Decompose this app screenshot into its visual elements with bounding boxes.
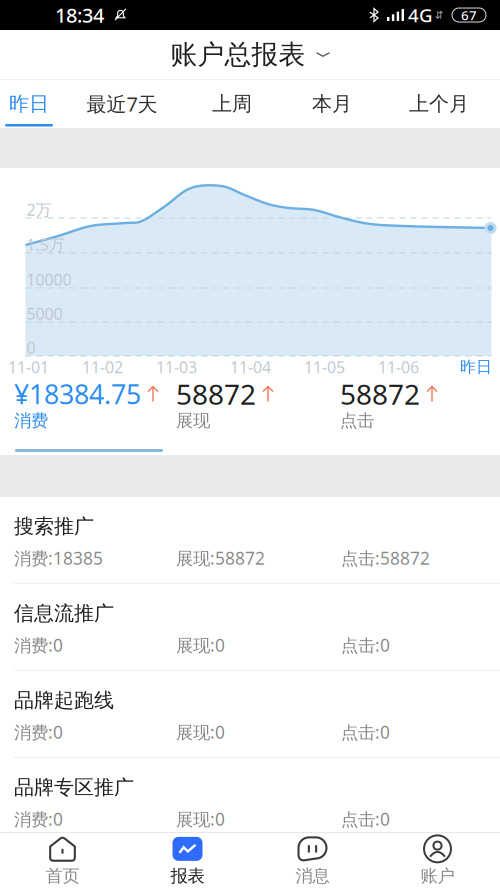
staticText: 搜索推广 — [14, 514, 94, 539]
staticText: 点击:0 — [341, 721, 390, 744]
button[interactable]: 报表 — [125, 833, 250, 889]
staticText: 2万 — [26, 199, 51, 220]
staticText: 67 — [461, 6, 477, 24]
staticText: 首页 — [45, 865, 79, 887]
staticText: 1.5万 — [26, 234, 64, 255]
staticText: 品牌起跑线 — [14, 688, 114, 713]
staticText: 昨日 — [9, 91, 49, 116]
staticText: 展现 — [176, 410, 210, 431]
button[interactable]: 账户 — [375, 833, 500, 889]
staticText: 点击:0 — [341, 634, 390, 657]
staticText: 展现:58872 — [176, 547, 265, 570]
staticText: ¥18384.75 — [14, 376, 141, 412]
staticText: ⇵ — [435, 9, 444, 21]
staticText: 消费:0 — [14, 634, 63, 657]
staticText: 点击:58872 — [341, 547, 430, 570]
staticText: 11-06 — [378, 356, 419, 378]
staticText: 账户 — [420, 865, 454, 887]
staticText: 本月 — [312, 91, 352, 116]
staticText: 11-05 — [304, 356, 345, 378]
button[interactable]: 账户总报表 — [0, 30, 500, 79]
button[interactable]: 首页 — [0, 833, 125, 889]
staticText: 最近7天 — [86, 90, 157, 117]
button[interactable]: 搜索推广 — [0, 497, 500, 583]
staticText: 消费:18385 — [14, 547, 103, 570]
button[interactable]: 品牌专区推广 — [0, 758, 500, 844]
staticText: 11-02 — [82, 356, 123, 378]
staticText: 信息流推广 — [14, 601, 114, 626]
staticText: 58872 — [340, 375, 420, 413]
button[interactable]: 最近7天 — [62, 80, 182, 128]
staticText: 点击:0 — [341, 808, 390, 831]
staticText: 5000 — [26, 303, 62, 324]
staticText: 上个月 — [409, 91, 469, 116]
staticText: 11-03 — [156, 356, 197, 378]
staticText: 4G — [408, 3, 433, 27]
staticText: 消费:0 — [14, 808, 63, 831]
staticText: 18:34 — [55, 2, 104, 28]
staticText: 展现:0 — [176, 808, 225, 831]
button[interactable]: 消息 — [250, 833, 375, 889]
staticText: 消费 — [14, 410, 48, 431]
staticText: 消费:0 — [14, 721, 63, 744]
staticText: 报表 — [170, 865, 204, 887]
button[interactable]: 上周 — [182, 80, 282, 128]
staticText: 昨日 — [460, 357, 492, 377]
staticText: 消息 — [295, 865, 329, 887]
staticText: 展现:0 — [176, 721, 225, 744]
staticText: 11-04 — [230, 356, 271, 378]
staticText: 上周 — [212, 91, 252, 116]
staticText: 点击 — [340, 410, 374, 431]
staticText: 账户总报表 — [170, 38, 305, 71]
button[interactable]: 上个月 — [382, 80, 496, 128]
staticText: 58872 — [176, 375, 256, 413]
staticText: 0 — [26, 337, 35, 358]
button[interactable]: 品牌起跑线 — [0, 671, 500, 757]
staticText: 展现:0 — [176, 634, 225, 657]
button[interactable]: 信息流推广 — [0, 584, 500, 670]
staticText: 11-01 — [8, 356, 49, 378]
button[interactable]: 本月 — [282, 80, 382, 128]
button[interactable]: 昨日 — [0, 80, 62, 128]
staticText: 品牌专区推广 — [14, 775, 134, 800]
staticText: 10000 — [26, 269, 71, 290]
